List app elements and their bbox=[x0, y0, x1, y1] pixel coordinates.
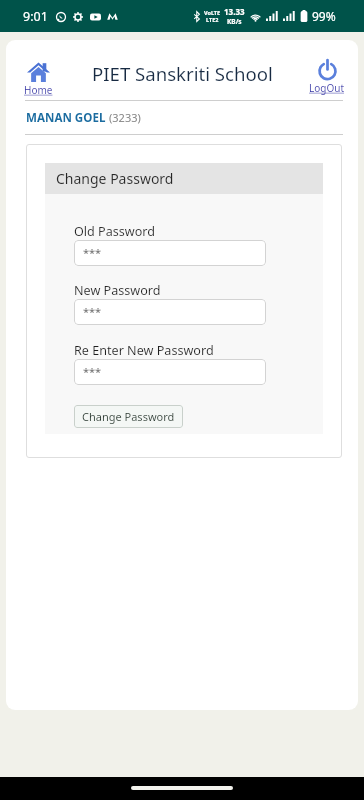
staticText: Change Password bbox=[56, 169, 174, 188]
staticText: *** bbox=[83, 245, 102, 260]
staticText: PIET Sanskriti School bbox=[92, 61, 273, 86]
staticText: Change Password bbox=[82, 409, 175, 424]
staticText: LTE2 bbox=[206, 16, 219, 23]
staticText: VoLTE bbox=[204, 9, 221, 16]
staticText: 13.33 bbox=[224, 6, 245, 17]
staticText: LogOut bbox=[309, 81, 345, 95]
staticText: (3233) bbox=[109, 110, 141, 125]
staticText: *** bbox=[83, 304, 102, 319]
staticText: *** bbox=[83, 364, 102, 379]
staticText: 9:01 bbox=[23, 8, 48, 25]
staticText: Re Enter New Password bbox=[74, 342, 214, 359]
staticText: Home bbox=[24, 83, 53, 97]
staticText: MANAN GOEL bbox=[26, 110, 106, 126]
staticText: 99% bbox=[312, 8, 336, 24]
button[interactable]: *** bbox=[74, 299, 266, 325]
staticText: New Password bbox=[74, 282, 161, 299]
button[interactable]: Home bbox=[20, 60, 57, 99]
button[interactable]: *** bbox=[74, 359, 266, 385]
staticText: Old Password bbox=[74, 223, 156, 240]
button[interactable]: LogOut bbox=[305, 57, 349, 97]
button[interactable]: *** bbox=[74, 240, 266, 266]
button[interactable]: Change Password bbox=[74, 405, 183, 428]
staticText: KB/s bbox=[227, 17, 242, 26]
